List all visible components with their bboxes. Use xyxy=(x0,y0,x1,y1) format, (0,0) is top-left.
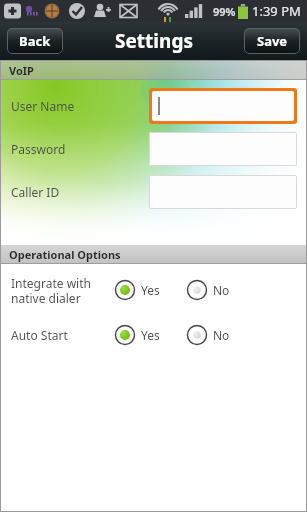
staticText: Yes xyxy=(141,327,160,343)
button[interactable]: Save xyxy=(244,28,300,54)
button[interactable]: Back xyxy=(7,28,63,54)
staticText: Yes xyxy=(141,282,160,298)
staticText: Settings xyxy=(115,28,193,54)
staticText: Caller ID xyxy=(11,184,60,200)
button[interactable]: No xyxy=(186,324,230,346)
button[interactable]: No xyxy=(186,279,230,301)
staticText: Password xyxy=(11,141,66,157)
staticText: VoIP xyxy=(9,63,34,78)
staticText: 99% xyxy=(213,4,236,19)
button[interactable] xyxy=(149,175,297,209)
button[interactable]: Yes xyxy=(114,279,160,301)
button[interactable]: Yes xyxy=(114,324,160,346)
staticText: No xyxy=(213,327,230,343)
staticText: Back xyxy=(19,32,51,50)
staticText: User Name xyxy=(11,98,75,114)
button[interactable] xyxy=(152,91,294,121)
staticText: Save xyxy=(257,32,288,50)
staticText: 1:39 PM xyxy=(252,2,301,20)
button[interactable] xyxy=(149,132,297,166)
staticText: Integrate with native dialer xyxy=(11,275,106,306)
staticText: Operational Options xyxy=(9,247,121,262)
staticText: Auto Start xyxy=(11,327,106,343)
staticText: No xyxy=(213,282,230,298)
